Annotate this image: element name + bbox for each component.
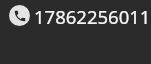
button[interactable]: Call <box>0 0 151 64</box>
staticText: 17862256011 <box>34 4 151 29</box>
other: Call <box>9 5 30 26</box>
